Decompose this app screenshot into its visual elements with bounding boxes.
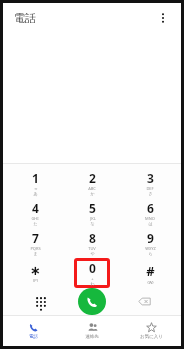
staticText: な [90,221,95,226]
staticText: わ [90,281,95,286]
staticText: 5 [89,200,96,216]
button[interactable]: Backspace [118,288,170,315]
button[interactable]: 3 [124,168,176,198]
button[interactable]: 電話 [4,316,62,346]
button[interactable]: 2 [66,168,118,198]
staticText: 2 [89,170,96,186]
staticText: ま [33,251,38,256]
staticText: 4 [32,200,39,216]
staticText: PQRS [30,246,41,251]
staticText: ∞ [34,186,38,191]
staticText: JKL [90,216,96,221]
staticText: 8 [89,230,96,246]
button[interactable]: ∗ [9,258,61,288]
button[interactable]: 7 [9,228,61,258]
button[interactable]: # [124,258,176,288]
staticText: お気に入り [140,334,163,340]
button[interactable]: 6 [124,198,176,228]
staticText: 6 [147,200,154,216]
staticText: 電話 [29,334,38,340]
staticText: 1 [32,170,39,186]
staticText: (W) [147,280,154,285]
staticText: 7 [32,230,39,246]
button[interactable]: 5 [66,198,118,228]
staticText: あ [33,191,38,196]
staticText: TUV [88,246,96,251]
staticText: 電話 [14,11,36,25]
staticText: ABC [88,186,96,191]
staticText: # [146,262,155,280]
staticText: か [90,191,95,196]
staticText: WXYZ [145,246,156,251]
staticText: GHI [31,216,39,221]
button[interactable]: 0 [66,258,118,288]
button[interactable]: 4 [9,198,61,228]
staticText: や [90,251,95,256]
button[interactable]: 8 [66,228,118,258]
button[interactable]: 1 [9,168,61,198]
staticText: MNO [145,216,155,221]
staticText: ら [148,251,153,256]
staticText: 連絡先 [85,334,99,340]
button[interactable]: More options [151,6,175,30]
staticText: た [33,221,38,226]
staticText: 9 [147,230,154,246]
button[interactable]: Hide keypad [15,288,67,315]
staticText: ∗ [30,263,41,278]
staticText: は [148,221,153,226]
staticText: さ [148,191,153,196]
button[interactable]: お気に入り [122,316,180,346]
button[interactable]: Call [78,288,106,315]
button[interactable]: 9 [124,228,176,258]
staticText: 0 [89,260,96,276]
button[interactable]: 連絡先 [63,316,121,346]
staticText: + [91,276,94,281]
staticText: (P) [33,278,38,283]
staticText: 3 [147,170,154,186]
staticText: DEF [146,186,154,191]
